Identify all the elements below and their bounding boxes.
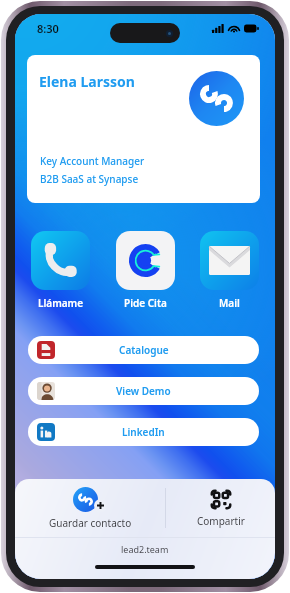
staticText: Elena Larsson xyxy=(39,72,135,91)
staticText: Guardar contacto xyxy=(49,516,132,530)
staticText: Compartir xyxy=(197,514,245,528)
staticText: B2B SaaS at Synapse xyxy=(40,172,139,186)
button[interactable]: Elena Larsson xyxy=(27,55,260,203)
button[interactable]: Mail xyxy=(200,231,259,310)
staticText: Key Account Manager xyxy=(40,154,145,168)
button[interactable]: Pide Cita xyxy=(116,231,175,310)
staticText: LinkedIn xyxy=(122,425,165,439)
staticText: Catalogue xyxy=(119,343,169,357)
staticText: Llámame xyxy=(38,296,84,310)
other: Compartir xyxy=(210,489,232,510)
staticText: Pide Cita xyxy=(124,296,167,310)
button[interactable]: Compartir xyxy=(166,479,275,537)
staticText: View Demo xyxy=(116,384,171,398)
button[interactable]: View Demo xyxy=(28,377,259,405)
staticText: lead2.team xyxy=(121,543,169,555)
staticText: 8:30 xyxy=(37,21,59,36)
button[interactable]: LinkedIn xyxy=(28,418,259,446)
button[interactable]: Llámame xyxy=(31,231,90,310)
button[interactable]: Catalogue xyxy=(28,336,259,364)
staticText: Mail xyxy=(219,296,240,310)
button[interactable]: Guardar contacto xyxy=(15,479,165,537)
